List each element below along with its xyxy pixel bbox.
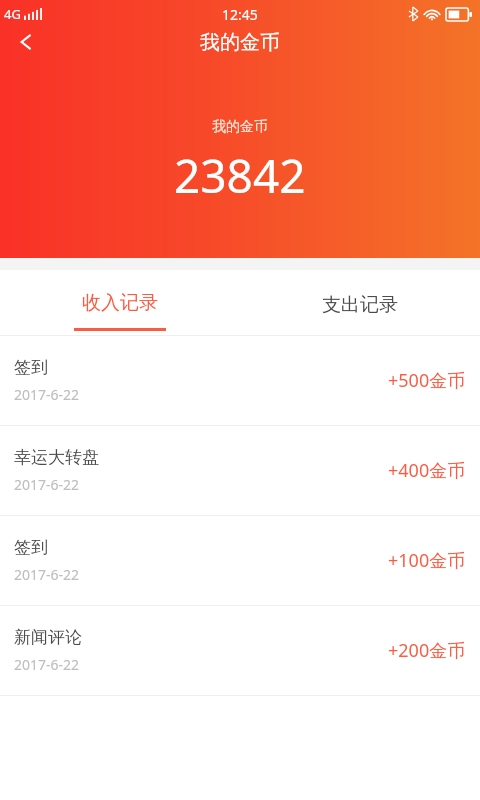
button[interactable]: Back	[0, 28, 52, 56]
staticText: 签到	[14, 537, 48, 558]
staticText: 我的金币	[200, 30, 280, 55]
staticText: 2017-6-22	[14, 385, 80, 404]
staticText: 2017-6-22	[14, 655, 80, 674]
button[interactable]: 收入记录	[0, 270, 240, 336]
staticText: 签到	[14, 357, 48, 378]
staticText: +400金币	[388, 458, 466, 483]
button[interactable]: 签到	[0, 336, 480, 425]
staticText: 2017-6-22	[14, 475, 80, 494]
staticText: 4G	[4, 5, 21, 23]
button[interactable]: 幸运大转盘	[0, 426, 480, 515]
staticText: 我的金币	[212, 118, 268, 136]
staticText: 2017-6-22	[14, 565, 80, 584]
staticText: +500金币	[388, 368, 466, 393]
button[interactable]: 签到	[0, 516, 480, 605]
staticText: 新闻评论	[14, 627, 82, 648]
staticText: 23842	[174, 144, 306, 207]
staticText: 支出记录	[322, 293, 398, 317]
staticText: 12:45	[222, 5, 258, 24]
staticText: 幸运大转盘	[14, 447, 99, 468]
button[interactable]: 新闻评论	[0, 606, 480, 695]
staticText: 收入记录	[82, 291, 158, 315]
staticText: +100金币	[388, 548, 466, 573]
button[interactable]: 支出记录	[240, 270, 480, 336]
staticText: +200金币	[388, 638, 466, 663]
